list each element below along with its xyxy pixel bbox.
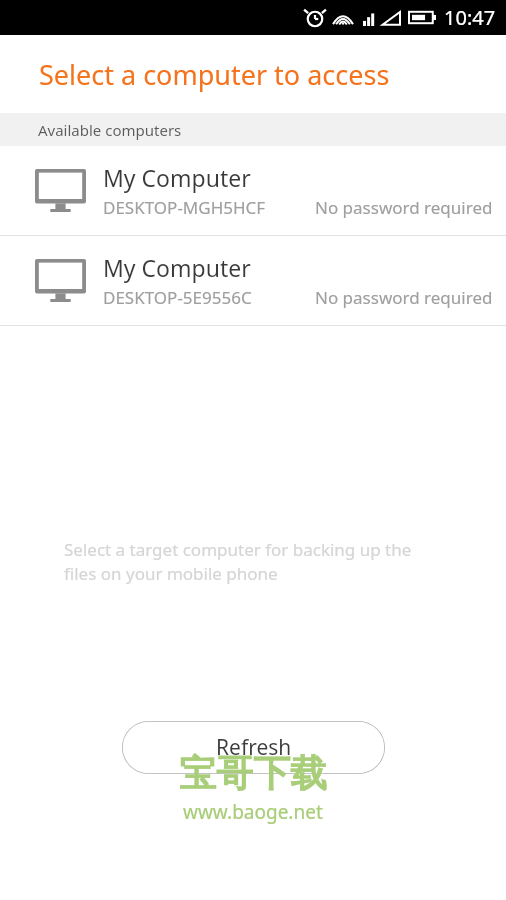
staticText: DESKTOP-5E9556C — [103, 286, 252, 309]
staticText: 宝哥下载 — [179, 750, 327, 797]
staticText: My Computer — [103, 252, 251, 283]
button[interactable]: Refresh — [122, 721, 385, 774]
staticText: Refresh — [216, 733, 292, 762]
staticText: Select a computer to access — [39, 56, 390, 93]
staticText: 10:47 — [444, 4, 496, 31]
staticText: No password required — [315, 286, 493, 309]
staticText: No password required — [315, 196, 493, 219]
other: Alarm — [304, 7, 326, 29]
button[interactable]: My Computer — [0, 146, 506, 235]
staticText: DESKTOP-MGH5HCF — [103, 196, 266, 219]
staticText: Available computers — [38, 120, 182, 140]
staticText: Select a target computer for backing up … — [64, 538, 412, 585]
button[interactable]: My Computer — [0, 236, 506, 325]
staticText: My Computer — [103, 162, 251, 193]
staticText: www.baoge.net — [183, 799, 323, 825]
